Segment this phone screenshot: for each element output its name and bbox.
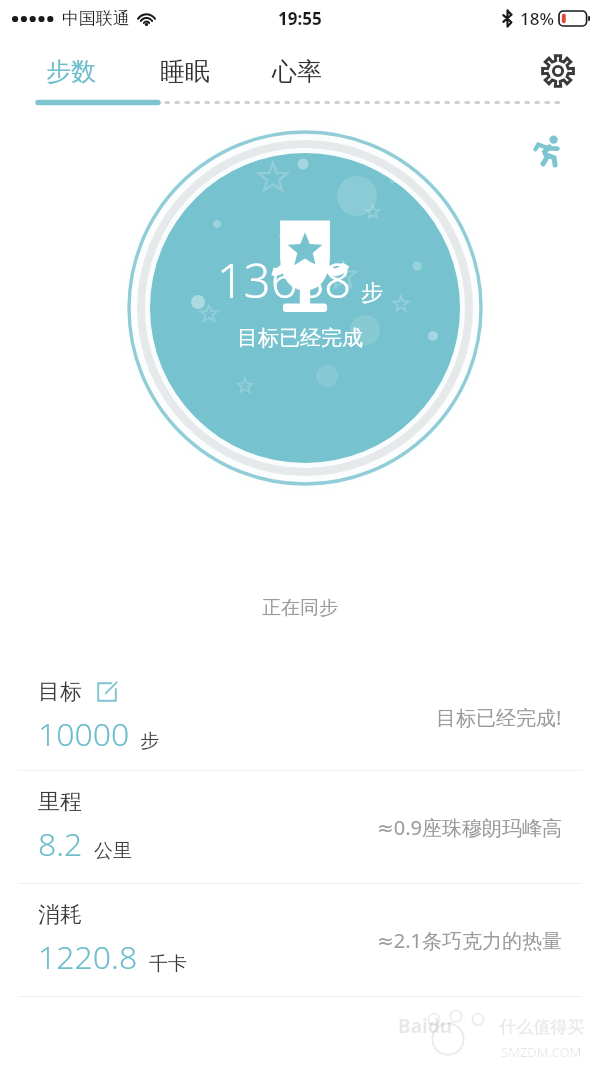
staticText: 什么值得买: [499, 1017, 584, 1038]
staticText: 步: [140, 729, 159, 753]
button[interactable]: 步数: [42, 48, 100, 95]
staticText: 目标: [38, 678, 82, 706]
staticText: 10000: [38, 712, 130, 756]
staticText: 睡眠: [160, 56, 210, 87]
staticText: 目标已经完成!: [436, 704, 562, 731]
button[interactable]: Activity: [520, 124, 574, 178]
staticText: 8.2: [38, 822, 83, 866]
staticText: 正在同步: [0, 596, 600, 620]
staticText: 1220.8: [38, 935, 138, 979]
staticText: 心率: [272, 56, 322, 87]
button[interactable]: 心率: [268, 48, 326, 95]
staticText: 消耗: [38, 901, 82, 929]
staticText: 千卡: [149, 952, 187, 976]
staticText: 19:55: [278, 7, 322, 30]
staticText: 18%: [520, 7, 554, 30]
button[interactable]: 消耗: [0, 884, 600, 996]
staticText: 公里: [94, 839, 132, 863]
staticText: SMZDM.COM: [501, 1043, 582, 1061]
staticText: 步数: [46, 56, 96, 87]
button[interactable]: Settings: [530, 43, 586, 99]
button[interactable]: 睡眠: [156, 48, 214, 95]
button[interactable]: 里程: [0, 771, 600, 883]
staticText: Baidu: [398, 1013, 453, 1039]
staticText: 中国联通: [62, 8, 130, 29]
staticText: 里程: [38, 788, 82, 816]
staticText: 目标已经完成: [237, 325, 363, 351]
button[interactable]: 目标: [0, 664, 600, 770]
staticText: ≈0.9座珠穆朗玛峰高: [377, 814, 562, 841]
staticText: 步: [361, 279, 383, 307]
staticText: ≈2.1条巧克力的热量: [377, 927, 562, 954]
staticText: 13688: [217, 248, 352, 312]
